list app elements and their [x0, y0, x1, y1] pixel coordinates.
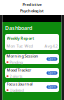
button[interactable]: Focus Journal	[5, 82, 59, 92]
staticText: Morning Session	[6, 53, 38, 58]
staticText: Pending	[9, 59, 22, 65]
staticText: Avg 4.2	[44, 43, 57, 48]
staticText: Mon Tue Wed	[6, 43, 32, 48]
staticText: Mood Tracker	[6, 67, 31, 72]
staticText: Updated	[9, 87, 23, 93]
staticText: 2 alerts	[9, 73, 22, 79]
staticText: Predictive	[22, 2, 41, 7]
staticText: Weekly Report	[6, 35, 34, 41]
staticText: Open	[48, 71, 56, 75]
staticText: Open	[48, 85, 56, 89]
staticText: Psychologist	[20, 8, 44, 13]
button[interactable]: Mood Tracker	[5, 68, 59, 78]
staticText: Dashboard	[5, 24, 32, 32]
staticText: Open	[48, 57, 56, 61]
staticText: Focus Journal	[6, 81, 32, 86]
button[interactable]: Morning Session	[5, 54, 59, 64]
